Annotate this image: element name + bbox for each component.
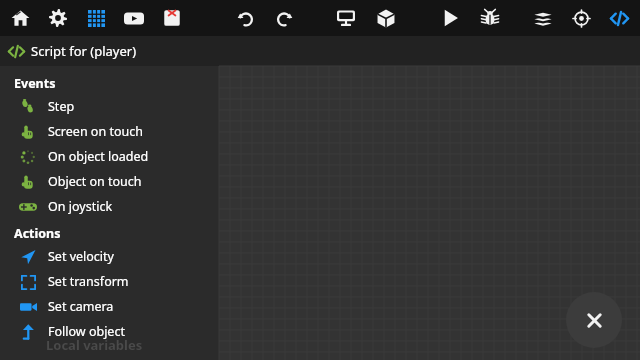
button[interactable]: Script editor bbox=[602, 1, 636, 35]
button[interactable]: Assets bbox=[369, 1, 403, 35]
staticText: Local variables bbox=[46, 336, 143, 354]
button[interactable]: Layers bbox=[526, 1, 560, 35]
button[interactable]: Undo bbox=[229, 1, 263, 35]
button[interactable]: Debug bbox=[473, 1, 507, 35]
button[interactable]: On object loaded bbox=[0, 144, 219, 169]
staticText: Script for (player) bbox=[31, 42, 137, 60]
button[interactable]: Grid bbox=[79, 1, 113, 35]
button[interactable]: Script for (player) bbox=[0, 36, 640, 66]
staticText: Screen on touch bbox=[48, 123, 143, 140]
button[interactable]: Set transform bbox=[0, 269, 219, 294]
button[interactable]: Step bbox=[0, 94, 219, 119]
button[interactable]: Play bbox=[433, 1, 467, 35]
staticText: Set velocity bbox=[48, 248, 114, 265]
staticText: Step bbox=[48, 98, 75, 115]
button[interactable]: Display bbox=[329, 1, 363, 35]
button[interactable]: On joystick bbox=[0, 194, 219, 219]
staticText: Set transform bbox=[48, 273, 129, 290]
button[interactable]: Set velocity bbox=[0, 244, 219, 269]
button[interactable]: Follow object bbox=[0, 319, 219, 344]
button[interactable]: Object on touch bbox=[0, 169, 219, 194]
button[interactable]: Video tutorials bbox=[117, 1, 151, 35]
staticText: On object loaded bbox=[48, 148, 149, 165]
button[interactable]: Settings bbox=[41, 1, 75, 35]
staticText: Object on touch bbox=[48, 173, 142, 190]
button[interactable]: Remove ads bbox=[155, 1, 189, 35]
staticText: Follow object bbox=[48, 323, 125, 340]
button[interactable]: Set camera bbox=[0, 294, 219, 319]
staticText: On joystick bbox=[48, 198, 113, 215]
staticText: Actions bbox=[14, 225, 61, 242]
button[interactable]: Transform tool bbox=[564, 1, 598, 35]
button[interactable]: Home bbox=[3, 1, 37, 35]
staticText: Events bbox=[14, 75, 56, 92]
button[interactable]: Redo bbox=[267, 1, 301, 35]
staticText: Set camera bbox=[48, 298, 114, 315]
button[interactable]: Screen on touch bbox=[0, 119, 219, 144]
button[interactable]: Close bbox=[566, 292, 622, 348]
